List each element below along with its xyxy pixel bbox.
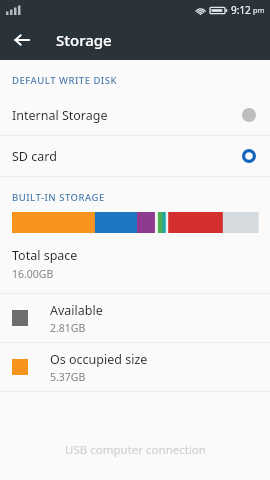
staticText: 16.00GB xyxy=(12,267,54,281)
staticText: Available xyxy=(50,302,103,319)
button[interactable]: USB computer connection xyxy=(0,428,270,472)
staticText: Total space xyxy=(12,247,78,264)
staticText: 9:12 xyxy=(231,3,251,17)
staticText: 5.37GB xyxy=(50,370,86,384)
staticText: Storage xyxy=(56,30,112,50)
staticText: SD card xyxy=(12,148,57,165)
staticText: BUILT-IN STORAGE xyxy=(12,191,105,204)
staticText: Internal Storage xyxy=(12,107,108,124)
button[interactable]: Internal Storage xyxy=(0,95,270,135)
button[interactable]: Back xyxy=(8,26,36,54)
staticText: Os occupied size xyxy=(50,351,148,368)
staticText: 2.81GB xyxy=(50,321,86,335)
staticText: USB computer connection xyxy=(65,442,206,458)
button[interactable]: SD card xyxy=(0,136,270,176)
button[interactable]: Os occupied size xyxy=(0,343,270,391)
staticText: pm xyxy=(253,5,265,15)
staticText: DEFAULT WRITE DISK xyxy=(12,74,117,87)
button[interactable]: Available xyxy=(0,294,270,342)
button[interactable]: Total space xyxy=(0,245,270,293)
